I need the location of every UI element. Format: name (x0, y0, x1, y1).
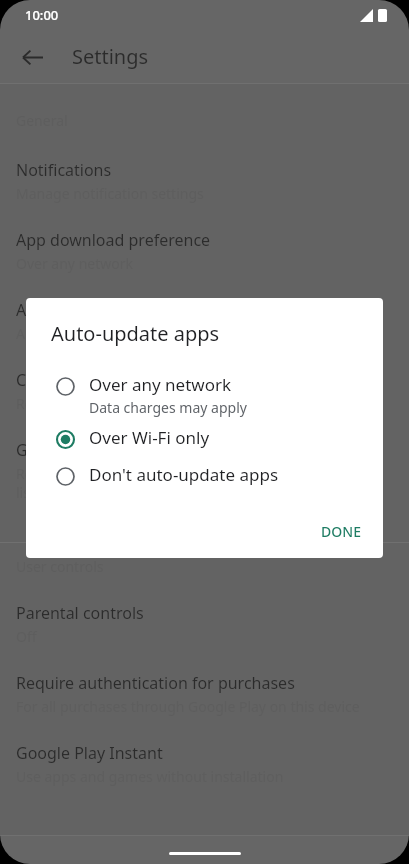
staticText: Over Wi-Fi only (89, 426, 210, 449)
staticText: Register this device to a Google account… (16, 464, 296, 502)
staticText: Auto-update apps over Wi-Fi only (16, 324, 234, 343)
staticText: Auto-update apps (51, 320, 220, 347)
staticText: Auto-update apps (16, 299, 151, 321)
staticText: DONE (321, 522, 361, 541)
staticText: Don't auto-update apps (89, 463, 279, 486)
button[interactable]: Back (10, 35, 54, 79)
staticText: Remove the searches you have performed (16, 394, 294, 413)
button[interactable]: DONE (311, 515, 371, 548)
staticText: Settings (72, 43, 149, 70)
button[interactable]: Require authentication for purchases (0, 672, 409, 742)
staticText: Google Play Instant (16, 742, 163, 764)
button[interactable]: Notifications (0, 159, 409, 229)
button[interactable]: App download preference (0, 229, 409, 299)
button[interactable]: Google Play Protect certification (0, 439, 409, 528)
staticText: App download preference (16, 229, 211, 251)
button[interactable]: Auto-update apps (0, 299, 409, 369)
staticText: Parental controls (16, 602, 144, 624)
staticText: Require authentication for purchases (16, 672, 295, 694)
staticText: Notifications (16, 159, 112, 181)
button[interactable]: Over any network (26, 368, 383, 421)
staticText: Google Play Protect certification (16, 439, 257, 461)
button[interactable]: Don't auto-update apps (26, 458, 383, 495)
button[interactable]: Parental controls (0, 602, 409, 672)
staticText: Over any network (89, 373, 232, 396)
button[interactable]: Google Play Instant (0, 742, 409, 812)
button[interactable]: Over Wi-Fi only (26, 421, 383, 458)
staticText: User controls (16, 557, 104, 576)
button[interactable]: Clear local search history (0, 369, 409, 439)
staticText: Clear local search history (16, 369, 204, 391)
staticText: Data charges may apply (89, 398, 247, 417)
staticText: 10:00 (25, 6, 59, 24)
